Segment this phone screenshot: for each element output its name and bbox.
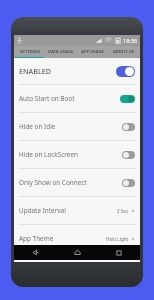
staticText: APP USAGE <box>81 49 104 55</box>
button[interactable]: Back <box>14 245 56 260</box>
staticText: Auto Start on Boot <box>19 94 75 103</box>
button[interactable]: Only Show on Connect <box>14 169 140 196</box>
staticText: 2 Sec <box>117 208 129 214</box>
staticText: Only Show on Connect <box>19 178 87 187</box>
button[interactable]: ENABLED <box>14 58 140 84</box>
button[interactable]: Toggle on <box>120 95 135 103</box>
staticText: 18:36 <box>123 37 138 44</box>
button[interactable]: Toggle off <box>122 179 135 187</box>
button[interactable]: Hide on LockScreen <box>14 141 140 168</box>
staticText: Holo Light <box>106 236 129 242</box>
button[interactable]: Update Interval <box>14 197 140 224</box>
staticText: Hide on LockScreen <box>19 150 78 159</box>
button[interactable]: Toggle off <box>122 151 135 159</box>
button[interactable]: Recent apps <box>98 245 140 260</box>
staticText: App Theme <box>19 234 54 243</box>
button[interactable]: SETTINGS <box>14 46 45 58</box>
button[interactable]: Auto Start on Boot <box>14 85 140 112</box>
button[interactable]: Home <box>56 245 98 260</box>
staticText: ABOUT US <box>113 49 135 55</box>
staticText: DATA USAGE <box>48 49 74 55</box>
staticText: Hide on Idle <box>19 122 56 131</box>
button[interactable]: Toggle off <box>122 123 135 131</box>
button[interactable]: ABOUT US <box>108 46 140 58</box>
staticText: SETTINGS <box>20 49 40 55</box>
staticText: ENABLED <box>19 66 52 76</box>
button[interactable]: App Theme <box>14 225 140 252</box>
staticText: Update Interval <box>19 206 66 215</box>
button[interactable]: Toggle on <box>116 66 135 77</box>
button[interactable]: APP USAGE <box>76 46 108 58</box>
button[interactable]: Hide on Idle <box>14 113 140 140</box>
button[interactable]: DATA USAGE <box>45 46 76 58</box>
